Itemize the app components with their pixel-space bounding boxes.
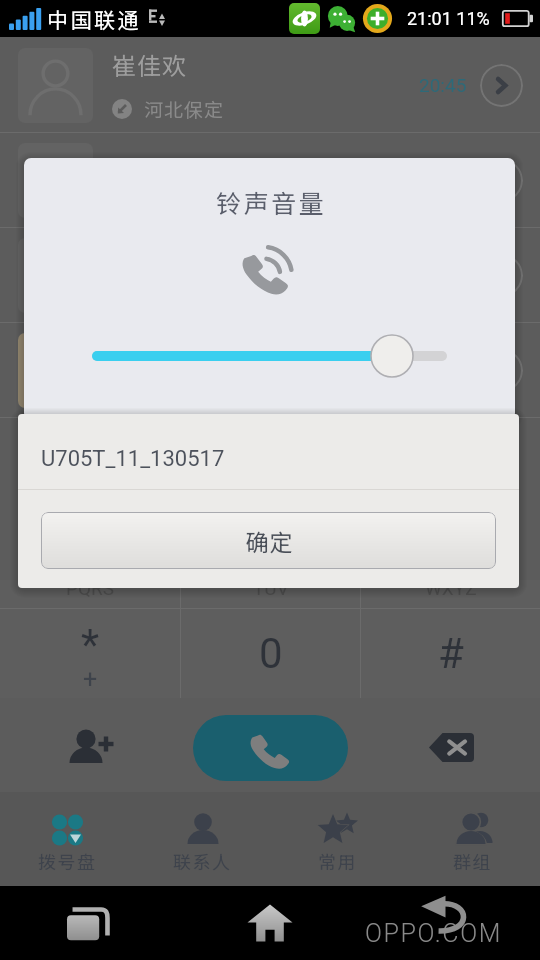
button[interactable]: # <box>361 609 540 698</box>
button[interactable]: 群组 <box>405 792 540 886</box>
staticText: U705T_11_130517 <box>41 446 225 472</box>
staticText: 崔佳欢 <box>112 47 187 82</box>
button[interactable]: Call details <box>0 133 540 227</box>
button[interactable]: Back <box>360 886 540 960</box>
button[interactable]: 联系人 <box>135 792 270 886</box>
staticText: 0 <box>259 629 283 678</box>
staticText: WXYZ <box>425 577 477 599</box>
button[interactable]: Recent apps <box>0 886 180 960</box>
staticText: # <box>438 629 464 678</box>
staticText: * <box>81 620 100 669</box>
button[interactable]: 崔佳欢 <box>0 38 540 132</box>
button[interactable]: 确定 <box>41 512 496 569</box>
staticText: 21:01 11% <box>407 8 490 29</box>
staticText: 河北保定 <box>144 95 225 123</box>
staticText: 铃声音量 <box>216 184 327 220</box>
staticText: 拨号盘 <box>38 848 97 874</box>
staticText: OPPO.COM <box>365 919 502 948</box>
button[interactable]: 常用 <box>270 792 405 886</box>
button[interactable]: * <box>0 609 180 698</box>
button[interactable]: Call details <box>0 228 540 322</box>
button[interactable]: Call details <box>480 64 523 107</box>
button[interactable]: 拨号盘 <box>0 792 135 886</box>
staticText: 确定 <box>245 524 293 557</box>
button[interactable]: Call <box>193 715 348 781</box>
staticText: 常用 <box>318 848 357 874</box>
staticText: 群组 <box>453 848 492 874</box>
button[interactable]: Call details <box>480 254 523 297</box>
button[interactable]: 0 <box>181 609 360 698</box>
staticText: + <box>83 665 98 694</box>
button[interactable]: Backspace <box>360 698 540 792</box>
staticText: PQRS <box>66 577 115 599</box>
button[interactable]: Call details <box>480 159 523 202</box>
button[interactable]: Home <box>180 886 360 960</box>
staticText: 联系人 <box>173 848 232 874</box>
staticText: 20:45 <box>419 74 467 96</box>
button[interactable]: Call details <box>0 323 540 417</box>
staticText: 中国联通 <box>47 4 141 34</box>
button[interactable]: Call details <box>480 349 523 392</box>
button[interactable]: Add contact <box>0 698 180 792</box>
staticText: TUV <box>253 577 289 599</box>
